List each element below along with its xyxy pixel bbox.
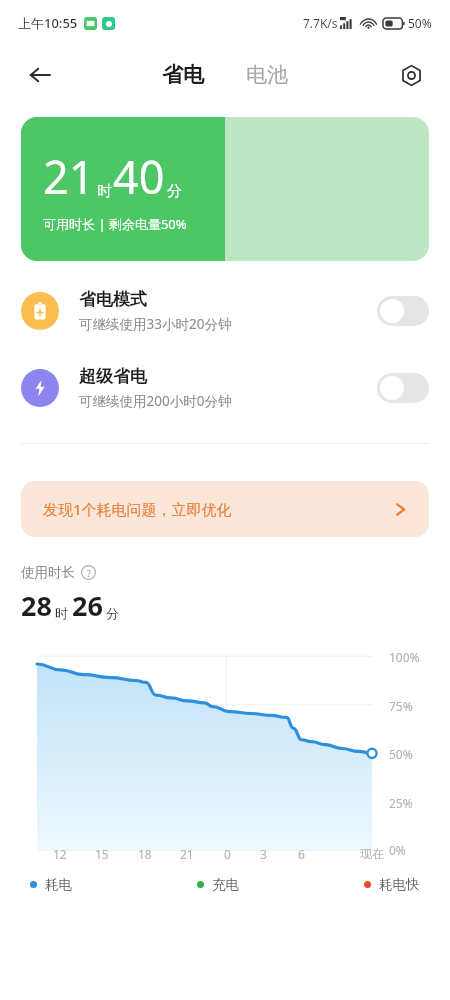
staticText: 0% [389,842,406,858]
button[interactable]: 省电模式 [0,285,450,337]
staticText: 耗电快 [379,876,420,893]
staticText: 12 [53,846,67,862]
button[interactable]: Help [81,565,96,580]
button[interactable]: Back [18,53,62,97]
staticText: 0 [224,846,231,862]
staticText: 28 [21,587,52,624]
staticText: 分 [106,605,119,621]
button[interactable]: 发现1个耗电问题，立即优化 [21,481,429,537]
staticText: ? [87,567,91,579]
button[interactable]: 省电 [154,56,212,94]
staticText: 25% [389,795,413,811]
staticText: 可用时长 | 剩余电量50% [43,215,187,233]
staticText: 75% [389,698,413,714]
staticText: 时 [55,605,68,621]
staticText: 使用时长 [21,564,75,581]
button[interactable]: 电池 [238,56,296,94]
staticText: 40 [113,146,165,207]
button[interactable]: Toggle [377,373,429,403]
staticText: 3 [260,846,267,862]
staticText: 耗电 [45,876,72,893]
staticText: 50% [389,746,413,762]
staticText: 上午10:55 [18,14,78,32]
staticText: 可继续使用33小时20分钟 [79,315,232,333]
staticText: 6 [298,846,305,862]
button[interactable]: Settings [390,54,432,96]
staticText: 26 [72,587,103,624]
staticText: 可继续使用200小时0分钟 [79,392,232,410]
staticText: 18 [138,846,152,862]
staticText: 50% [408,15,432,31]
staticText: 充电 [212,876,239,893]
staticText: 省电 [162,62,204,88]
staticText: 现在 [360,846,384,861]
staticText: 15 [95,846,109,862]
staticText: 分 [167,182,182,201]
staticText: 发现1个耗电问题，立即优化 [43,499,232,519]
staticText: 时 [97,182,112,201]
staticText: 100% [389,649,420,665]
staticText: 21 [180,846,194,862]
staticText: 超级省电 [79,366,147,387]
button[interactable]: 超级省电 [0,362,450,414]
staticText: 省电模式 [79,289,147,310]
button[interactable]: 21 [21,117,429,261]
staticText: 21 [43,146,95,207]
staticText: 电池 [246,62,288,88]
button[interactable]: Toggle [377,296,429,326]
staticText: 7.7K/s [303,15,338,31]
